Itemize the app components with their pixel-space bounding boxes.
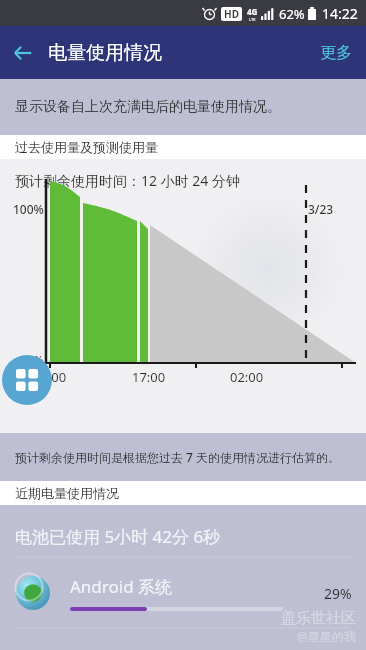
staticText: 17:00 — [132, 368, 166, 386]
staticText: 100% — [13, 201, 44, 217]
staticText: 预计剩余使用时间是根据您过去 7 天的使用情况进行估算的。 — [15, 449, 341, 465]
staticText: 14:22 — [322, 4, 358, 23]
staticText: @星星的我 — [297, 628, 356, 644]
staticText: LTE — [249, 17, 256, 22]
staticText: 近期电量使用情况 — [15, 485, 119, 501]
staticText: 29% — [324, 584, 352, 603]
staticText: 电池已使用 5小时 42分 6秒 — [15, 525, 221, 548]
staticText: Android 系统 — [70, 575, 173, 598]
staticText: 电量使用情况 — [48, 41, 162, 65]
staticText: 02:00 — [230, 368, 264, 386]
staticText: 4G — [247, 6, 258, 17]
staticText: 3/23 — [308, 201, 334, 217]
staticText: 08:00 — [33, 368, 67, 386]
staticText: 62% — [279, 5, 305, 23]
staticText: 过去使用量及预测使用量 — [15, 139, 158, 155]
button[interactable]: Apps grid — [2, 355, 52, 405]
button[interactable]: 更多 — [306, 33, 366, 73]
button[interactable]: Back — [0, 31, 44, 75]
staticText: 显示设备自上次充满电后的电量使用情况。 — [15, 98, 281, 116]
button[interactable]: Android 系统 — [0, 563, 366, 623]
staticText: 盖乐世社区 — [281, 609, 356, 628]
staticText: 0% — [28, 352, 44, 367]
staticText: HD — [224, 7, 239, 21]
staticText: 更多 — [320, 43, 352, 63]
staticText: 预计剩余使用时间：12 小时 24 分钟 — [15, 171, 240, 190]
